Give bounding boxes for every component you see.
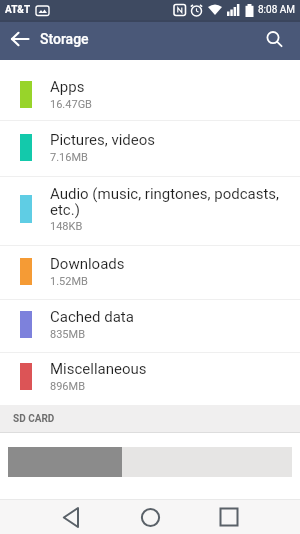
staticText: 8:08 AM	[258, 4, 296, 16]
button[interactable]	[254, 19, 294, 59]
button[interactable]: Cached data	[0, 300, 300, 353]
staticText: AT&T	[5, 4, 31, 16]
button[interactable]: Audio (music, ringtones, podcasts, etc.)	[0, 177, 300, 246]
staticText: 1.52MB	[50, 275, 88, 288]
staticText: 148KB	[50, 220, 83, 233]
staticText: 7.16MB	[50, 151, 88, 164]
button[interactable]: Miscellaneous	[0, 353, 300, 405]
button[interactable]: Downloads	[0, 246, 300, 300]
staticText: 835MB	[50, 328, 86, 341]
staticText: Audio (music, ringtones, podcasts, etc.)	[50, 185, 280, 218]
staticText: 896MB	[50, 380, 86, 393]
button[interactable]	[0, 19, 40, 59]
staticText: Miscellaneous	[50, 360, 147, 378]
button[interactable]	[59, 505, 83, 529]
button[interactable]	[217, 505, 241, 529]
button[interactable]	[138, 505, 162, 529]
staticText: Cached data	[50, 308, 134, 326]
button[interactable]: Apps	[0, 60, 300, 121]
staticText: SD CARD	[13, 413, 55, 425]
staticText: 16.47GB	[50, 98, 92, 111]
staticText: Pictures, videos	[50, 131, 156, 149]
staticText: Downloads	[50, 255, 125, 273]
staticText: Storage	[40, 31, 89, 47]
staticText: Apps	[50, 78, 85, 96]
button[interactable]: Pictures, videos	[0, 121, 300, 177]
